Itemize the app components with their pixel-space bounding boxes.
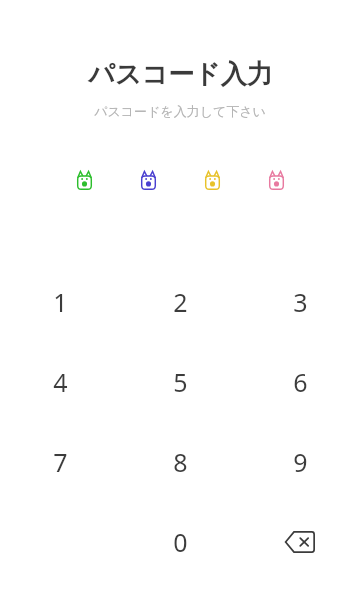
- staticText: 2: [173, 285, 188, 319]
- other: Passcode digit 1: [71, 167, 97, 193]
- staticText: 8: [173, 445, 188, 479]
- other: Passcode digit 2: [135, 167, 161, 193]
- staticText: 7: [53, 445, 68, 479]
- button[interactable]: 4: [0, 342, 120, 422]
- button[interactable]: 7: [0, 422, 120, 502]
- staticText: 5: [173, 365, 188, 399]
- button[interactable]: 1: [0, 262, 120, 342]
- staticText: 6: [293, 365, 308, 399]
- staticText: 9: [293, 445, 308, 479]
- other: Passcode digit 3: [199, 167, 225, 193]
- staticText: 4: [53, 365, 68, 399]
- button[interactable]: 2: [120, 262, 240, 342]
- button[interactable]: 9: [240, 422, 360, 502]
- button[interactable]: 0: [120, 502, 240, 582]
- staticText: 1: [53, 285, 68, 319]
- button[interactable]: Backspace: [240, 502, 360, 582]
- staticText: 3: [293, 285, 308, 319]
- staticText: パスコード入力: [88, 58, 273, 91]
- button[interactable]: 6: [240, 342, 360, 422]
- button[interactable]: 3: [240, 262, 360, 342]
- other: Passcode digit 4: [263, 167, 289, 193]
- button[interactable]: 5: [120, 342, 240, 422]
- staticText: パスコードを入力して下さい: [94, 103, 266, 119]
- button[interactable]: 8: [120, 422, 240, 502]
- staticText: 0: [173, 525, 188, 559]
